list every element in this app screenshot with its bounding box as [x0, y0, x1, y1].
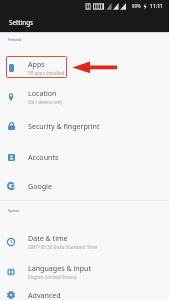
staticText: Languages & input — [28, 263, 91, 273]
button[interactable]: Apps — [0, 53, 169, 82]
staticText: Advanced — [28, 290, 61, 300]
button[interactable]: Location — [0, 82, 169, 111]
button[interactable]: Languages & input — [0, 257, 169, 286]
staticText: Location — [28, 88, 57, 98]
staticText: 50 apps installed — [28, 70, 65, 76]
staticText: English (United States) — [28, 274, 77, 280]
staticText: Security & fingerprint — [28, 121, 100, 131]
staticText: 11:11 — [150, 3, 164, 10]
staticText: GMT+05:30 India Standard Time — [28, 244, 98, 250]
staticText: Personal — [8, 38, 22, 42]
button[interactable]: Google — [0, 171, 169, 200]
other: Pointer arrow — [72, 61, 117, 74]
button[interactable]: Accounts — [0, 142, 169, 171]
button[interactable]: Date & time — [0, 227, 169, 256]
staticText: Google — [28, 181, 52, 191]
staticText: Accounts — [28, 152, 59, 162]
staticText: Apps — [28, 59, 45, 69]
staticText: On / device only — [28, 99, 63, 105]
staticText: Date & time — [28, 233, 68, 243]
button[interactable]: Security & fingerprint — [0, 111, 169, 140]
staticText: 89% — [132, 3, 141, 9]
button[interactable]: Advanced — [0, 280, 169, 300]
staticText: Settings — [9, 18, 34, 27]
staticText: System — [8, 209, 20, 213]
